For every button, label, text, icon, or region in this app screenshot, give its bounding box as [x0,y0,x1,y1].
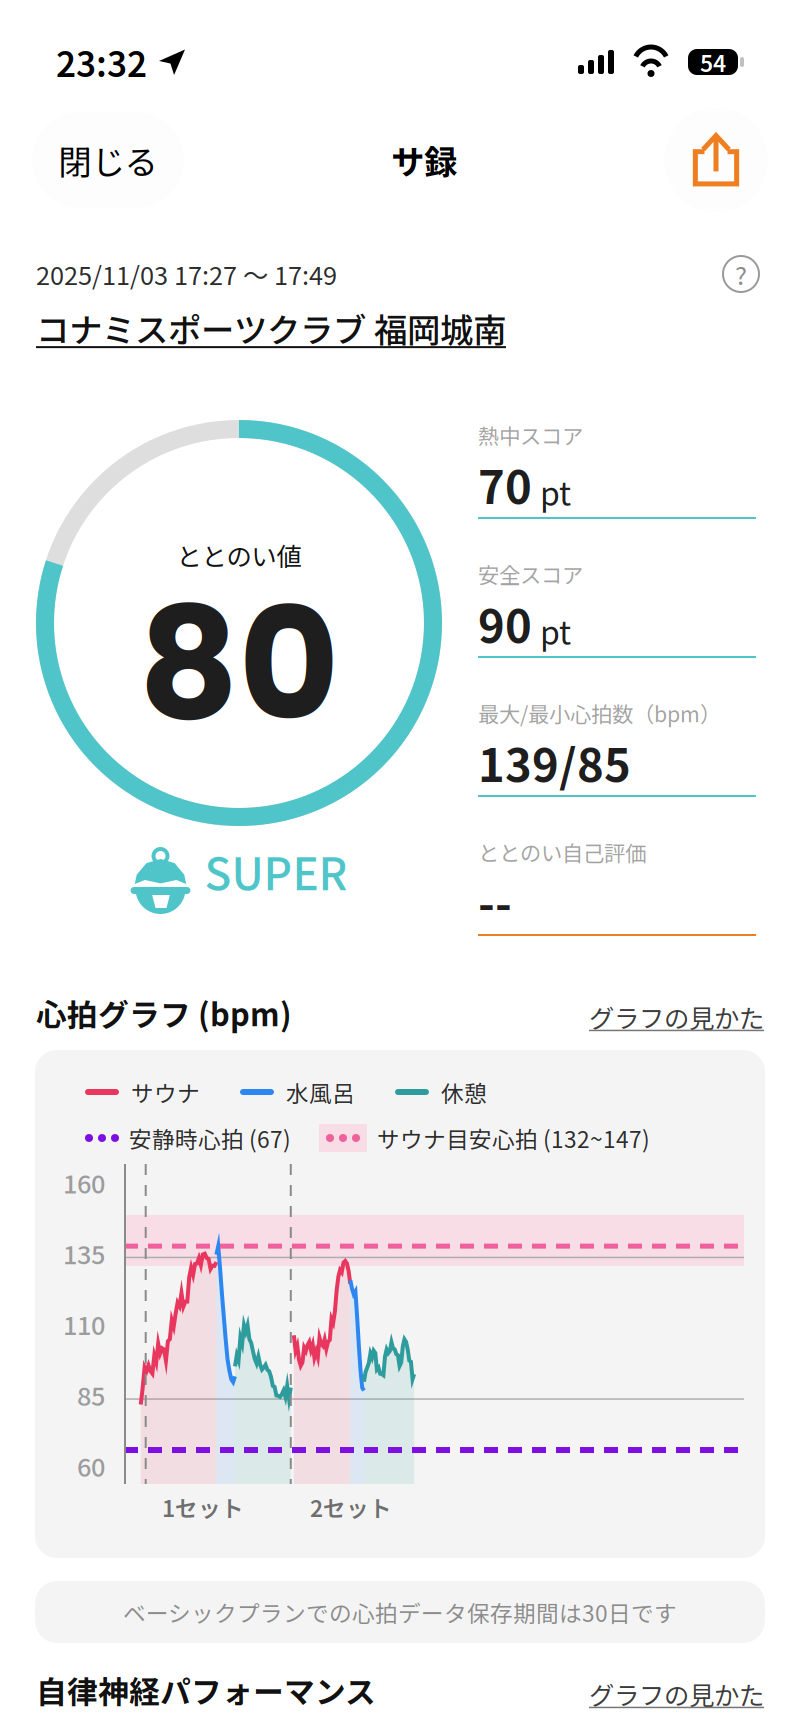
staticText: SUPER [204,839,347,903]
staticText: サウナ目安心拍 (132~147) [377,1122,650,1154]
staticText: 水風呂 [286,1076,355,1108]
button[interactable]: Help [718,251,764,297]
staticText: 最大/最小心拍数（bpm） [478,698,721,728]
staticText: 54 [700,46,726,78]
button[interactable]: Share [664,108,768,212]
staticText: 心拍グラフ (bpm) [36,991,292,1035]
staticText: 安全スコア [478,559,583,589]
staticText: 2025/11/03 17:27 〜 17:49 [36,256,337,292]
staticText: サ録 [391,136,457,184]
staticText: 2セット [310,1491,392,1523]
staticText: 110 [63,1306,105,1342]
staticText: ? [735,256,747,292]
staticText: 安静時心拍 (67) [129,1122,291,1154]
button[interactable]: グラフの見かた [589,998,764,1035]
button[interactable]: 閉じる [32,112,184,208]
staticText: グラフの見かた [589,1675,764,1712]
staticText: コナミスポーツクラブ 福岡城南 [36,304,506,352]
staticText: ととのい値 [176,537,301,573]
staticText: 85 [77,1376,105,1413]
staticText: 自律神経パフォーマンス [36,1668,376,1712]
staticText: -- [478,868,512,934]
staticText: 休憩 [441,1076,487,1108]
staticText: 135 [63,1235,105,1271]
staticText: pt [540,469,571,515]
staticText: 1セット [162,1491,244,1523]
staticText: 熱中スコア [478,420,583,450]
staticText: 90 [478,590,532,656]
staticText: グラフの見かた [589,998,764,1035]
staticText: 60 [77,1447,105,1484]
staticText: pt [540,608,571,654]
staticText: サウナ [131,1076,200,1108]
staticText: 80 [138,556,339,772]
button[interactable]: グラフの見かた [589,1675,764,1712]
staticText: 閉じる [58,136,157,184]
staticText: ベーシックプランでの心拍データ保存期間は30日です [123,1596,677,1628]
staticText: 160 [63,1164,105,1201]
staticText: ととのい自己評価 [478,837,646,867]
staticText: 23:32 [56,37,147,87]
staticText: 70 [478,451,532,517]
staticText: 139/85 [478,729,631,795]
